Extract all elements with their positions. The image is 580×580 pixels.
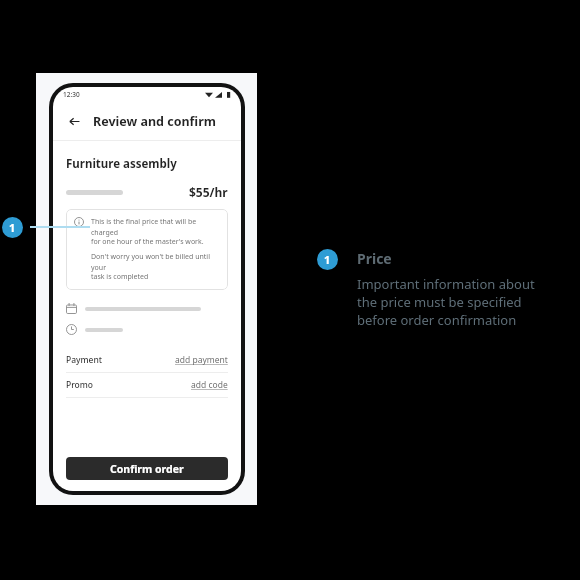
button[interactable]: Back — [64, 111, 84, 131]
staticText: $55/hr — [189, 184, 228, 200]
staticText: Price — [357, 249, 392, 268]
staticText: the price must be specified — [357, 293, 522, 311]
button[interactable]: Payment — [66, 348, 228, 372]
staticText: Payment — [66, 354, 103, 366]
button[interactable]: Promo — [66, 373, 228, 397]
staticText: for one hour of the master's work. — [91, 237, 204, 247]
staticText: 1 — [324, 252, 331, 267]
staticText: add code — [191, 379, 228, 391]
button[interactable]: Confirm order — [66, 457, 228, 480]
staticText: Review and confirm — [93, 113, 216, 130]
staticText: 12:30 — [63, 90, 80, 99]
staticText: Don't worry you won't be billed until yo… — [91, 252, 220, 272]
staticText: This is the final price that will be cha… — [91, 217, 220, 237]
staticText: Confirm order — [110, 462, 184, 476]
staticText: 1 — [9, 220, 16, 235]
staticText: Important information about — [357, 275, 535, 293]
staticText: before order confirmation — [357, 311, 517, 329]
staticText: Promo — [66, 379, 94, 391]
staticText: Furniture assembly — [66, 156, 177, 172]
staticText: task is completed — [91, 272, 149, 282]
staticText: add payment — [175, 354, 228, 366]
